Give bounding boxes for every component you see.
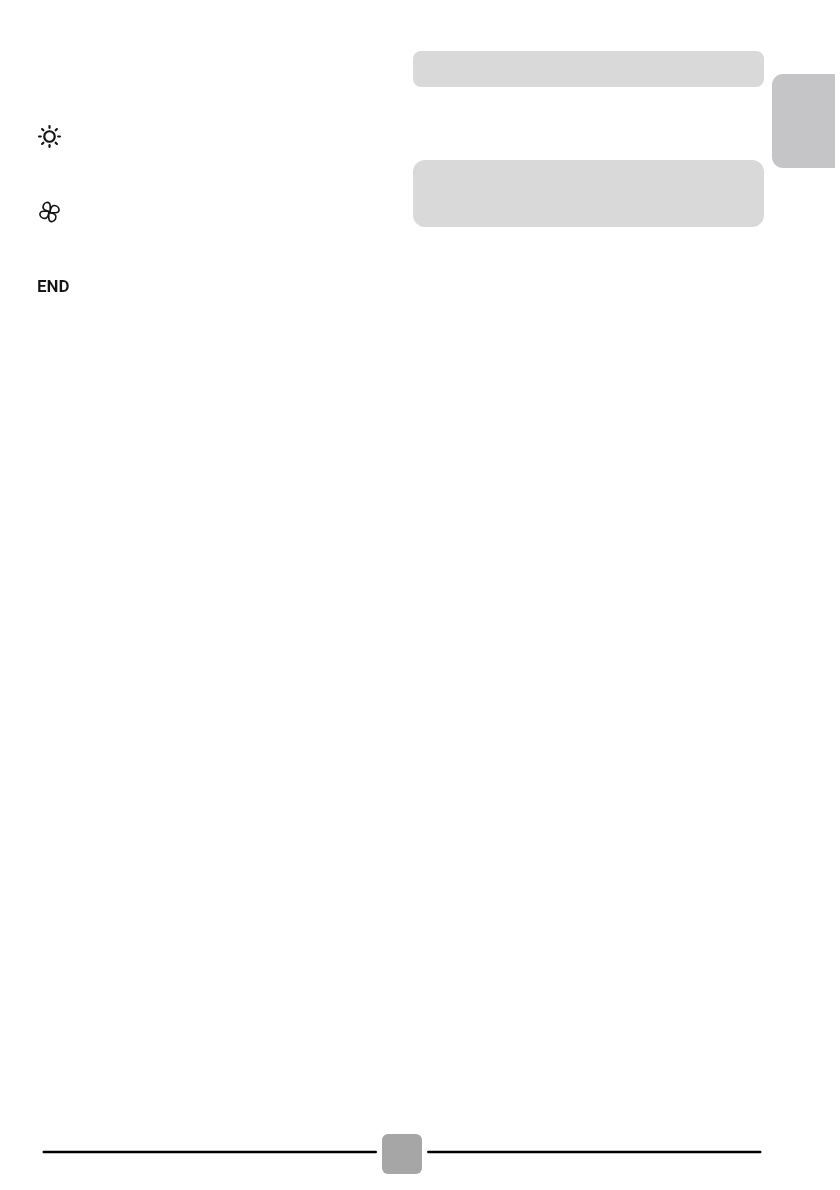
staticText: END — [37, 276, 70, 296]
button[interactable]: Brightness — [29, 116, 70, 157]
button[interactable]: Fan speed — [29, 190, 70, 231]
button[interactable]: Slider handle — [382, 1134, 422, 1174]
button[interactable]: END — [37, 276, 70, 296]
button[interactable] — [772, 74, 835, 168]
